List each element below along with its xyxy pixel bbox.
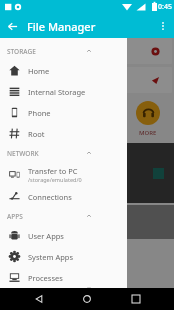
button[interactable]: Recents: [126, 289, 146, 309]
staticText: Phone: [28, 108, 51, 118]
staticText: STORAGE: [7, 47, 36, 56]
staticText: Processes: [28, 273, 63, 283]
staticText: NETWORK: [7, 149, 39, 158]
button[interactable]: Transfer to PC: [0, 162, 127, 186]
button[interactable]: Root: [0, 123, 127, 144]
button[interactable]: Back: [29, 289, 49, 309]
staticText: /storage/emulated/0: [28, 176, 82, 183]
button[interactable]: Home: [77, 289, 97, 309]
button[interactable]: Internal Storage: [0, 81, 127, 102]
staticText: MORE: [139, 129, 157, 137]
staticText: User Apps: [28, 231, 64, 241]
button[interactable]: Home: [0, 60, 127, 81]
staticText: 10:45: [154, 2, 172, 12]
staticText: File Manager: [27, 19, 96, 34]
staticText: System Apps: [28, 252, 74, 262]
staticText: APPS: [7, 212, 23, 221]
staticText: Connections: [28, 192, 72, 202]
button[interactable]: More options: [154, 17, 172, 35]
button[interactable]: Connections: [0, 186, 127, 207]
button[interactable]: Phone: [0, 102, 127, 123]
button[interactable]: System Apps: [0, 246, 127, 267]
button[interactable]: User Apps: [0, 225, 127, 246]
button[interactable]: Processes: [0, 267, 127, 288]
staticText: Transfer to PC: [28, 166, 78, 176]
button[interactable]: Back: [3, 17, 21, 35]
staticText: Root: [28, 129, 45, 139]
staticText: Internal Storage: [28, 87, 86, 97]
staticText: Home: [28, 66, 50, 76]
